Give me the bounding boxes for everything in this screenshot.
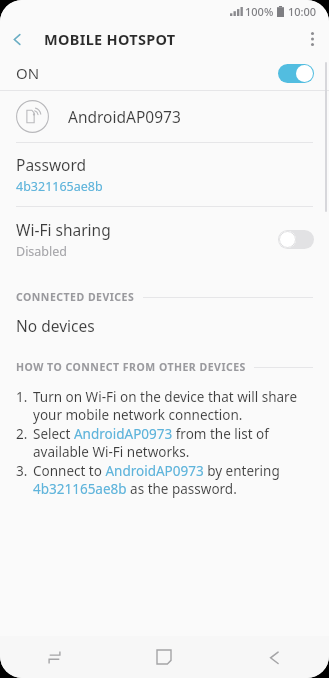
- staticText: MOBILE HOTSPOT: [44, 29, 176, 49]
- button[interactable]: Recents: [0, 636, 109, 678]
- staticText: 2.: [16, 425, 33, 443]
- button[interactable]: More options: [295, 22, 329, 56]
- staticText: AndroidAP0973: [68, 106, 181, 127]
- staticText: No devices: [16, 315, 95, 336]
- button[interactable]: Password: [0, 143, 329, 206]
- staticText: Wi-Fi sharing: [16, 219, 111, 240]
- button[interactable]: Back: [0, 22, 34, 56]
- staticText: 100%: [245, 4, 274, 19]
- staticText: HOW TO CONNECT FROM OTHER DEVICES: [16, 360, 246, 374]
- button[interactable]: Home: [109, 636, 219, 678]
- button[interactable]: ON: [0, 56, 329, 90]
- staticText: 10:00: [288, 4, 317, 19]
- staticText: 4b321165ae8b: [16, 178, 103, 195]
- staticText: 3.: [16, 462, 33, 480]
- staticText: 1.: [16, 388, 33, 406]
- staticText: Connect to AndroidAP0973 by entering 4b3…: [33, 462, 313, 498]
- button[interactable]: Back: [219, 636, 329, 678]
- staticText: CONNECTED DEVICES: [16, 290, 135, 304]
- staticText: Turn on Wi-Fi on the device that will sh…: [33, 388, 313, 424]
- button[interactable]: AndroidAP0973: [0, 91, 329, 142]
- staticText: Password: [16, 154, 87, 175]
- staticText: Disabled: [16, 243, 68, 260]
- staticText: Select AndroidAP0973 from the list of av…: [33, 425, 313, 461]
- staticText: ON: [16, 63, 278, 83]
- button[interactable]: Wi-Fi sharing: [0, 207, 329, 272]
